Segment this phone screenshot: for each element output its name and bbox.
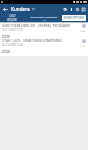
staticText: Kundera [11,6,30,12]
button[interactable]: SHOW OPTIONS [62,15,86,21]
button[interactable]: Details [82,39,86,43]
button[interactable]: Battery [68,4,74,14]
staticText: 450,600 [7,18,17,22]
button[interactable]: Log out [62,4,68,14]
staticText: 01:22 [3,35,9,38]
button[interactable]: Details [82,24,86,28]
button[interactable]: Help [74,4,80,14]
button[interactable]: Specification Completed [30,15,58,21]
staticText: 2,847 [9,14,16,18]
staticText: 12 [43,18,46,21]
button[interactable]: HERE THERE HERE 201 - SEVERAL THOUSAND [0,24,88,39]
button[interactable]: Kundera [11,6,35,12]
button[interactable]: 2,847 [7,14,17,22]
staticText: 01:22 [3,50,9,53]
staticText: SHOW OPTIONS [64,16,84,20]
staticText: Specification Completed [30,15,58,18]
staticText: 12:45 [80,30,86,33]
staticText: HERE THERE HERE 201 - SEVERAL THOUSAND [2,24,70,28]
staticText: 12:45 [80,45,86,48]
button[interactable]: Back [0,4,11,14]
staticText: 03-11-2020 11:20 [2,28,23,32]
button[interactable]: More options [80,4,86,14]
staticText: 03-11-2020 11:20 [2,43,23,47]
staticText: UTAH 1,4,05 - SOMETHING SOMETHING [2,39,62,43]
button[interactable]: UTAH 1,4,05 - SOMETHING SOMETHING [0,39,88,54]
